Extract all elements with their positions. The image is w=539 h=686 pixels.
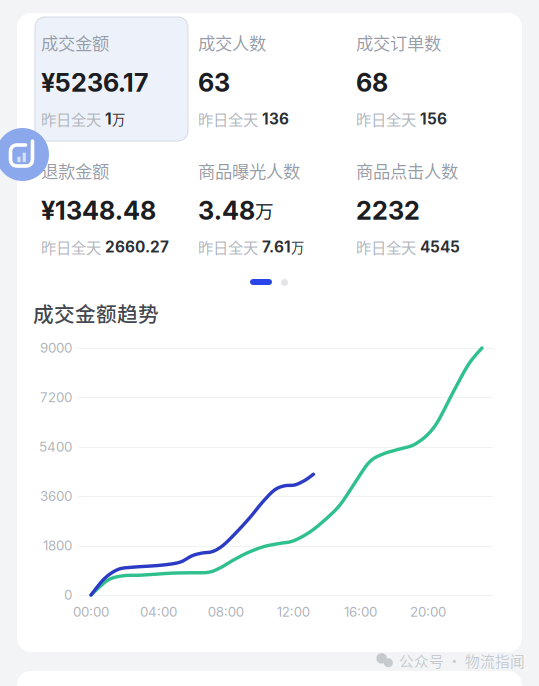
button[interactable]: Page 1 (250, 279, 272, 285)
staticText: 04:00 (140, 604, 177, 620)
staticText: 退款金额 (41, 158, 109, 183)
button[interactable]: Page 2 (281, 279, 288, 286)
staticText: 万 (291, 237, 304, 256)
staticText: 昨日全天 (198, 236, 258, 258)
staticText: 商品曝光人数 (198, 158, 300, 183)
staticText: 2232 (356, 195, 420, 226)
staticText: 136 (262, 110, 289, 128)
staticText: 成交金额 (41, 30, 109, 55)
staticText: 万 (112, 109, 125, 128)
staticText: ¥5236.17 (41, 67, 149, 98)
button[interactable]: 成交订单数 (356, 30, 506, 138)
staticText: 20:00 (410, 604, 446, 620)
staticText: 5400 (39, 439, 72, 455)
staticText: 12:00 (277, 604, 310, 620)
staticText: 3.48 (198, 195, 255, 226)
staticText: 7200 (40, 389, 72, 405)
staticText: 3600 (40, 488, 72, 504)
staticText: 昨日全天 (356, 236, 416, 258)
staticText: 昨日全天 (198, 108, 258, 130)
staticText: 昨日全天 (41, 108, 101, 130)
staticText: 成交金额趋势 (33, 298, 159, 328)
staticText: 2660.27 (105, 238, 169, 256)
staticText: 00:00 (73, 604, 109, 620)
staticText: 商品点击人数 (356, 158, 458, 183)
staticText: 公众号 · 物流指闻 (399, 650, 525, 671)
staticText: 成交人数 (198, 30, 266, 55)
staticText: ¥1348.48 (41, 195, 156, 226)
button[interactable]: 退款金额 (41, 158, 191, 266)
button[interactable]: 商品点击人数 (356, 158, 506, 266)
button[interactable]: 成交人数 (198, 30, 348, 138)
staticText: 昨日全天 (41, 236, 101, 258)
staticText: 68 (356, 67, 388, 98)
staticText: 1800 (43, 537, 72, 554)
staticText: 成交订单数 (356, 30, 441, 55)
button[interactable]: 商品曝光人数 (198, 158, 348, 266)
staticText: 万 (255, 197, 274, 224)
staticText: 1 (105, 110, 112, 128)
staticText: 63 (198, 67, 230, 98)
staticText: 0 (64, 587, 72, 603)
staticText: 昨日全天 (356, 108, 416, 130)
staticText: 9000 (40, 340, 72, 356)
staticText: 7.61 (262, 238, 291, 256)
button[interactable]: 数据分析 (0, 128, 49, 181)
staticText: 08:00 (208, 604, 244, 620)
staticText: 16:00 (344, 604, 377, 620)
button[interactable]: 成交金额 (41, 30, 191, 138)
staticText: 4545 (420, 238, 460, 256)
staticText: 156 (420, 110, 447, 128)
